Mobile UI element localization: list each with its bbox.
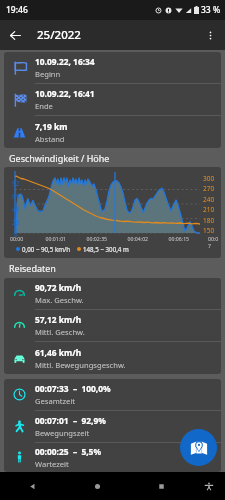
staticText: 0,00 ~ 90,5 km/h xyxy=(22,245,71,253)
staticText: Ende xyxy=(35,101,53,111)
button[interactable]: 57,12 km/h xyxy=(4,310,221,342)
staticText: Mittl. Bewegungsgeschw. xyxy=(35,360,126,370)
button[interactable]: 00:00:25 – 5,5% xyxy=(4,443,221,472)
staticText: 19:46 xyxy=(6,4,28,16)
staticText: Reisedaten xyxy=(9,262,56,274)
staticText: Gesamtzeit xyxy=(35,396,76,406)
staticText: 00:07:33 – 100,0% xyxy=(35,383,111,394)
button[interactable]: Accessibility xyxy=(193,472,225,500)
button[interactable]: 7,19 km xyxy=(4,116,221,148)
button[interactable]: Back xyxy=(0,472,65,500)
staticText: Geschwindigkeit / Höhe xyxy=(9,152,110,164)
button[interactable]: 61,46 km/h xyxy=(4,342,221,374)
button[interactable]: Recent apps xyxy=(129,472,193,500)
staticText: 00:00:25 – 5,5% xyxy=(35,446,101,457)
button[interactable]: 00:07:33 – 100,0% xyxy=(4,379,221,411)
button[interactable]: More options xyxy=(195,20,225,50)
staticText: 90,72 km/h xyxy=(35,282,82,293)
staticText: Max. Geschw. xyxy=(35,295,84,305)
staticText: 57,12 km/h xyxy=(35,314,82,325)
staticText: Wartezeit xyxy=(35,459,69,469)
button[interactable]: Back xyxy=(0,20,30,50)
button[interactable]: 00:07:01 – 92,9% xyxy=(4,411,221,443)
button[interactable]: 10.09.22, 16:34 xyxy=(4,52,221,84)
staticText: 10.09.22, 16:34 xyxy=(35,56,95,67)
staticText: 61,46 km/h xyxy=(35,347,82,358)
staticText: Beginn xyxy=(35,69,61,79)
staticText: 10.09.22, 16:41 xyxy=(35,88,95,99)
staticText: Bewegungszeit xyxy=(35,428,90,438)
button[interactable]: 90,72 km/h xyxy=(4,278,221,310)
staticText: 33 % xyxy=(201,4,221,16)
staticText: Mittl. Geschw. xyxy=(35,327,85,337)
staticText: 25/2022 xyxy=(37,27,81,43)
button[interactable]: 10.09.22, 16:41 xyxy=(4,84,221,116)
staticText: Abstand xyxy=(35,134,65,144)
staticText: 00:07:01 – 92,9% xyxy=(35,415,106,426)
staticText: 148,5 ~ 300,4 m xyxy=(83,245,129,253)
button[interactable]: Home xyxy=(65,472,129,500)
button[interactable]: Show map xyxy=(180,429,217,466)
staticText: 7,19 km xyxy=(35,121,68,132)
